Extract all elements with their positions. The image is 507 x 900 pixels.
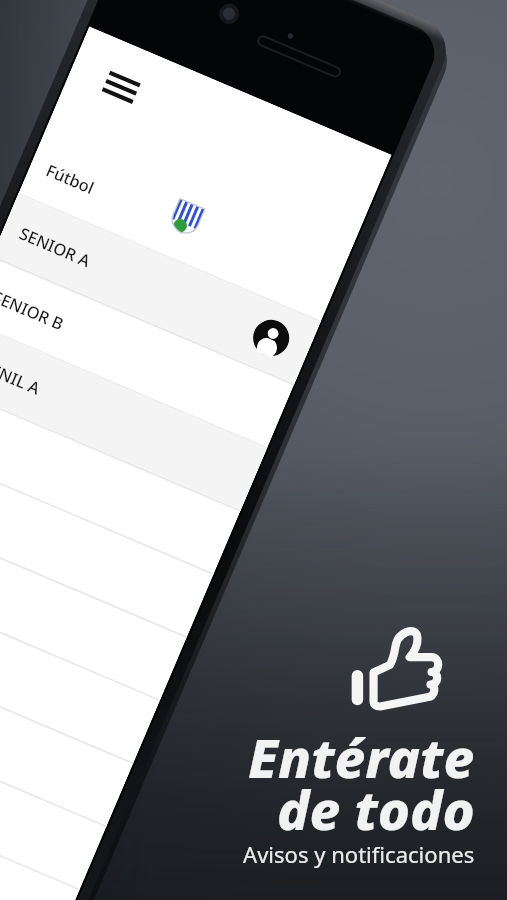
button[interactable]: Entérate de todo — Avisos y notificacion…	[0, 0, 507, 900]
